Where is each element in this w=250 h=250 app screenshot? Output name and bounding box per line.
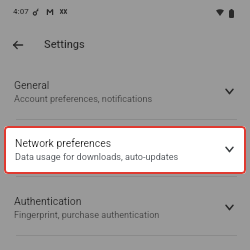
button[interactable]: Authentication [0,180,250,236]
staticText: Authentication [14,195,82,207]
staticText: Data usage for downloads, auto-updates [15,152,179,163]
staticText: Account preferences, notifications [14,94,153,105]
button[interactable]: Network preferences [4,126,246,174]
button[interactable]: Back [5,31,31,57]
staticText: Fingerprint, purchase authentication [14,210,160,221]
staticText: Network preferences [15,137,112,149]
button[interactable]: General [0,64,250,120]
staticText: Settings [44,38,85,51]
staticText: General [14,79,50,91]
staticText: 4:07 [13,7,29,16]
